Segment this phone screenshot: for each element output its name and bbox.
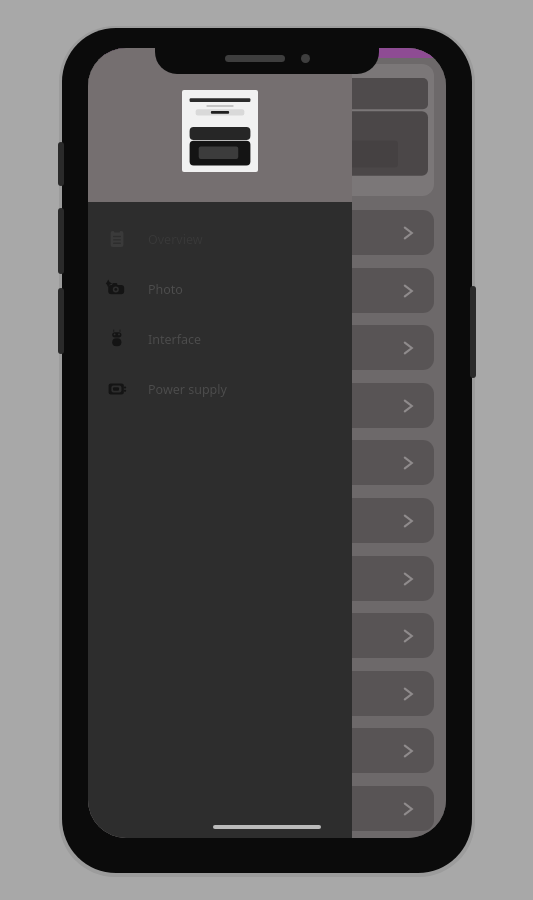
button[interactable] bbox=[100, 613, 434, 658]
button[interactable] bbox=[100, 64, 434, 196]
staticText: Overview bbox=[148, 231, 203, 248]
button[interactable] bbox=[182, 90, 258, 172]
button[interactable] bbox=[100, 498, 434, 543]
button[interactable] bbox=[100, 786, 434, 831]
button[interactable] bbox=[100, 383, 434, 428]
button[interactable] bbox=[100, 440, 434, 485]
other: Power supply bbox=[107, 379, 127, 399]
other: Interface bbox=[107, 329, 127, 349]
button[interactable]: Interface bbox=[88, 314, 352, 364]
staticText: Power supply bbox=[148, 381, 227, 398]
staticText: Interface bbox=[148, 331, 202, 348]
other: Photo bbox=[107, 279, 127, 299]
button[interactable] bbox=[100, 268, 434, 313]
other: Overview bbox=[107, 229, 127, 249]
button[interactable] bbox=[100, 728, 434, 773]
button[interactable]: Photo bbox=[88, 264, 352, 314]
button[interactable] bbox=[100, 325, 434, 370]
button[interactable]: Power supply bbox=[88, 364, 352, 414]
button[interactable] bbox=[100, 210, 434, 255]
staticText: Photo bbox=[148, 281, 183, 298]
button[interactable] bbox=[100, 671, 434, 716]
button[interactable] bbox=[100, 556, 434, 601]
